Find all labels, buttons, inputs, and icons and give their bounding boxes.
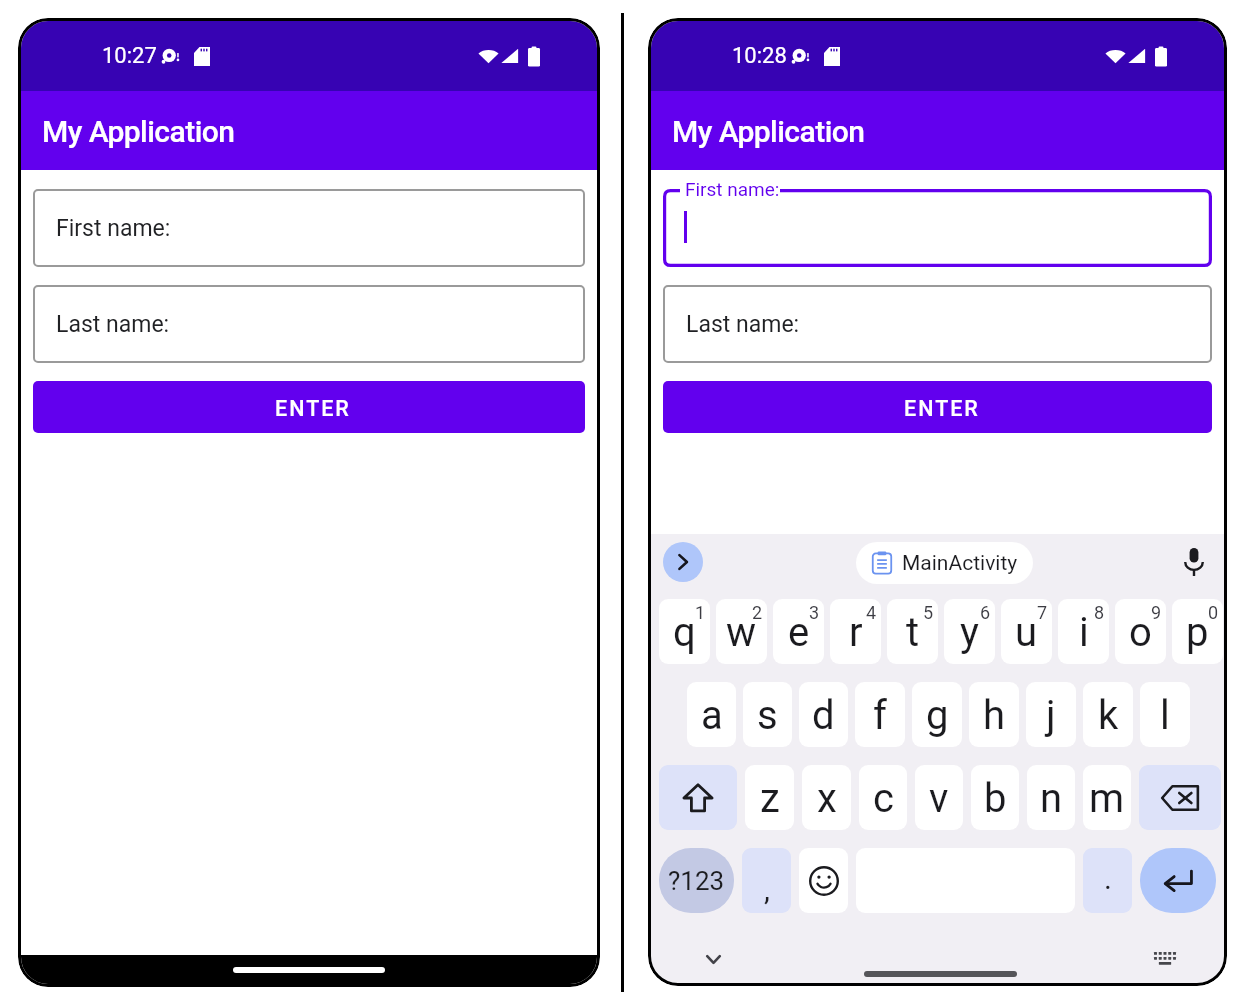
staticText: 1	[695, 602, 706, 623]
staticText: m	[1089, 775, 1125, 822]
staticText: k	[1098, 692, 1119, 739]
button[interactable]: Voice input	[1176, 544, 1212, 580]
staticText: MainActivity	[902, 551, 1018, 576]
button[interactable]: z	[745, 765, 794, 830]
button[interactable]: ENTER	[663, 381, 1212, 433]
staticText: e	[788, 609, 810, 656]
staticText: g	[926, 692, 949, 739]
button[interactable]: e	[773, 599, 824, 664]
button[interactable]: f	[855, 682, 905, 747]
button[interactable]: s	[743, 682, 792, 747]
button[interactable]: Hide keyboard	[697, 943, 729, 975]
staticText: Last name:	[56, 311, 170, 338]
staticText: z	[760, 775, 780, 822]
button[interactable]: x	[802, 765, 851, 830]
staticText: t	[906, 609, 920, 656]
staticText: 0	[1208, 602, 1219, 623]
button[interactable]: ,	[742, 848, 791, 913]
button[interactable]: MainActivity	[856, 542, 1033, 584]
staticText: p	[1186, 609, 1209, 656]
button[interactable]: t	[887, 599, 938, 664]
staticText: ,	[764, 872, 770, 907]
button[interactable]: r	[830, 599, 881, 664]
staticText: f	[873, 692, 887, 739]
staticText: d	[812, 692, 835, 739]
button[interactable]: Expand toolbar	[663, 542, 703, 582]
button[interactable]: Last name:	[663, 285, 1212, 363]
staticText: y	[960, 609, 979, 656]
staticText: b	[984, 775, 1007, 822]
button[interactable]: ?123	[659, 848, 734, 913]
staticText: o	[1129, 609, 1152, 656]
button[interactable]: o	[1115, 599, 1166, 664]
staticText: 7	[1037, 602, 1048, 623]
staticText: My Application	[42, 114, 235, 149]
button[interactable]: w	[716, 599, 767, 664]
staticText: My Application	[672, 114, 865, 149]
button[interactable]: q	[659, 599, 710, 664]
button[interactable]: Enter	[1140, 848, 1216, 913]
button[interactable]: d	[799, 682, 848, 747]
staticText: n	[1040, 775, 1063, 822]
staticText: Last name:	[686, 311, 800, 338]
staticText: 10:28	[732, 43, 787, 69]
button[interactable]: Backspace	[1139, 765, 1221, 830]
staticText: r	[849, 609, 863, 656]
button[interactable]: Last name:	[33, 285, 585, 363]
staticText: ENTER	[275, 396, 351, 421]
button[interactable]: h	[969, 682, 1019, 747]
button[interactable]: .	[1083, 848, 1132, 913]
button[interactable]: First name:	[663, 189, 1212, 267]
button[interactable]: j	[1026, 682, 1076, 747]
button[interactable]: Emoji	[799, 848, 848, 913]
button[interactable]: m	[1083, 765, 1131, 830]
staticText: x	[817, 775, 837, 822]
staticText: 4	[866, 602, 877, 623]
staticText: First name:	[685, 178, 780, 200]
button[interactable]: b	[971, 765, 1019, 830]
staticText: 8	[1094, 602, 1105, 623]
button[interactable]: i	[1058, 599, 1109, 664]
staticText: v	[929, 775, 949, 822]
button[interactable]: n	[1027, 765, 1075, 830]
button[interactable]: Shift	[659, 765, 737, 830]
staticText: 5	[923, 602, 934, 623]
staticText: h	[983, 692, 1006, 739]
staticText: w	[726, 609, 757, 656]
staticText: ?123	[668, 866, 725, 896]
button[interactable]: Change keyboard	[1149, 942, 1181, 974]
staticText: a	[701, 692, 723, 739]
button[interactable]: c	[859, 765, 907, 830]
staticText: 2	[752, 602, 763, 623]
button[interactable]: y	[944, 599, 995, 664]
staticText: u	[1015, 609, 1038, 656]
staticText: 10:27	[102, 43, 157, 69]
button[interactable]: p	[1172, 599, 1223, 664]
staticText: 9	[1151, 602, 1162, 623]
staticText: .	[1104, 861, 1112, 896]
staticText: 6	[980, 602, 991, 623]
staticText: ENTER	[904, 396, 980, 421]
staticText: q	[673, 609, 696, 656]
button[interactable]: First name:	[33, 189, 585, 267]
staticText: i	[1079, 609, 1089, 656]
staticText: j	[1046, 692, 1056, 739]
staticText: l	[1160, 692, 1170, 739]
button[interactable]: ENTER	[33, 381, 585, 433]
staticText: 3	[809, 602, 820, 623]
staticText: c	[873, 775, 894, 822]
button[interactable]: u	[1001, 599, 1052, 664]
button[interactable]: k	[1083, 682, 1133, 747]
button[interactable]: g	[912, 682, 962, 747]
button[interactable]: l	[1140, 682, 1190, 747]
staticText: s	[757, 692, 778, 739]
button[interactable]: v	[915, 765, 963, 830]
button[interactable]: a	[687, 682, 736, 747]
staticText: First name:	[56, 215, 171, 242]
